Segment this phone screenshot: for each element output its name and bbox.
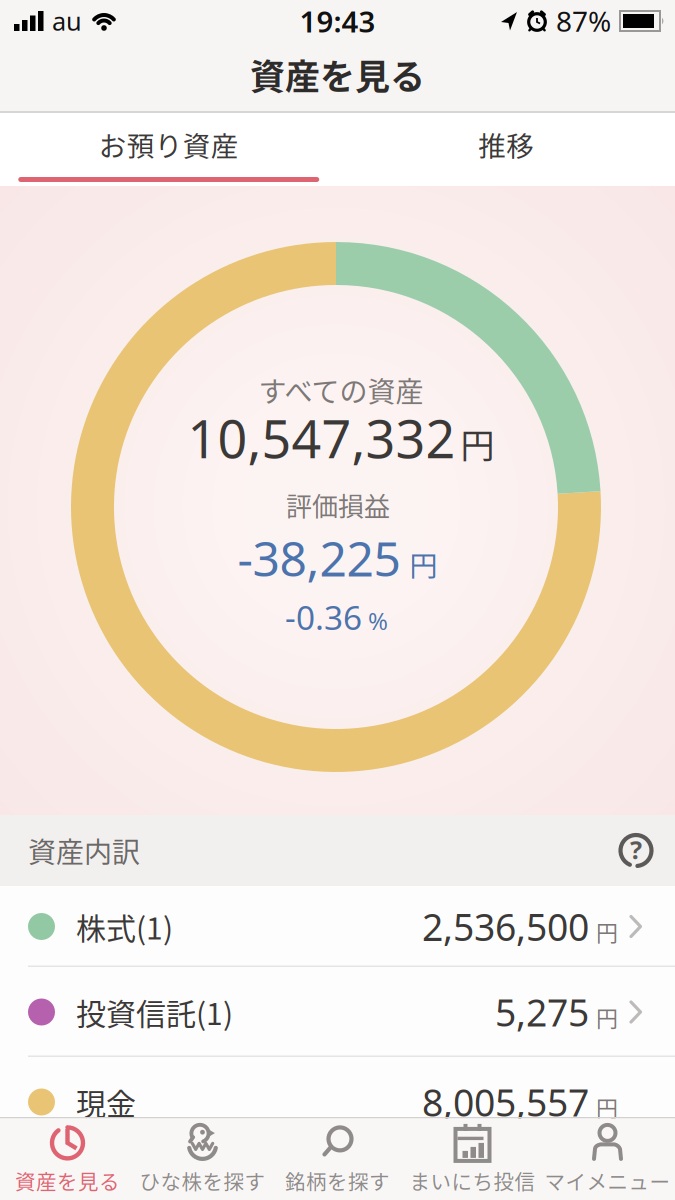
staticText: 87% [556, 2, 611, 40]
button[interactable]: ? [617, 831, 655, 869]
button[interactable]: 株式(1) [0, 886, 675, 967]
button[interactable]: マイメニュー [540, 1120, 675, 1198]
staticText: マイメニュー [544, 1166, 670, 1196]
button[interactable]: ひな株を探す [135, 1120, 270, 1198]
staticText: 株式(1) [76, 905, 173, 948]
staticText: 投資信託(1) [76, 990, 233, 1034]
staticText: -38,225 [237, 526, 400, 590]
staticText: 資産内訳 [28, 830, 140, 871]
staticText: 推移 [478, 125, 534, 164]
button[interactable]: まいにち投信 [405, 1120, 540, 1198]
staticText: ? [630, 833, 642, 866]
staticText: 19:43 [299, 1, 375, 40]
staticText: ひな株を探す [139, 1166, 265, 1196]
staticText: 10,547,332 [187, 403, 455, 473]
staticText: まいにち投信 [409, 1166, 535, 1196]
staticText: % [368, 605, 388, 637]
button[interactable]: 現金 [0, 1057, 675, 1147]
staticText: 円 [460, 419, 494, 468]
staticText: すべての資産 [258, 370, 423, 410]
staticText: 2,536,500 [422, 902, 589, 951]
button[interactable]: 投資信託(1) [0, 967, 675, 1057]
staticText: 5,275 [495, 987, 589, 1037]
staticText: 資産を見る [15, 1166, 120, 1196]
staticText: 資産を見る [250, 49, 425, 100]
staticText: 円 [596, 1001, 618, 1033]
staticText: 円 [596, 915, 618, 947]
button[interactable]: お預り資産 [0, 113, 337, 186]
staticText: お預り資産 [99, 125, 239, 164]
button[interactable]: 銘柄を探す [270, 1120, 405, 1198]
staticText: 8,005,557 [422, 1077, 589, 1127]
staticText: 円 [409, 544, 437, 585]
staticText: 評価損益 [286, 486, 390, 524]
button[interactable]: 推移 [337, 113, 675, 186]
staticText: au [52, 4, 82, 38]
staticText: 銘柄を探す [285, 1166, 390, 1196]
staticText: 円 [596, 1091, 618, 1123]
staticText: -0.36 [285, 595, 362, 639]
staticText: 現金 [76, 1080, 136, 1124]
button[interactable]: 資産を見る [0, 1120, 135, 1198]
